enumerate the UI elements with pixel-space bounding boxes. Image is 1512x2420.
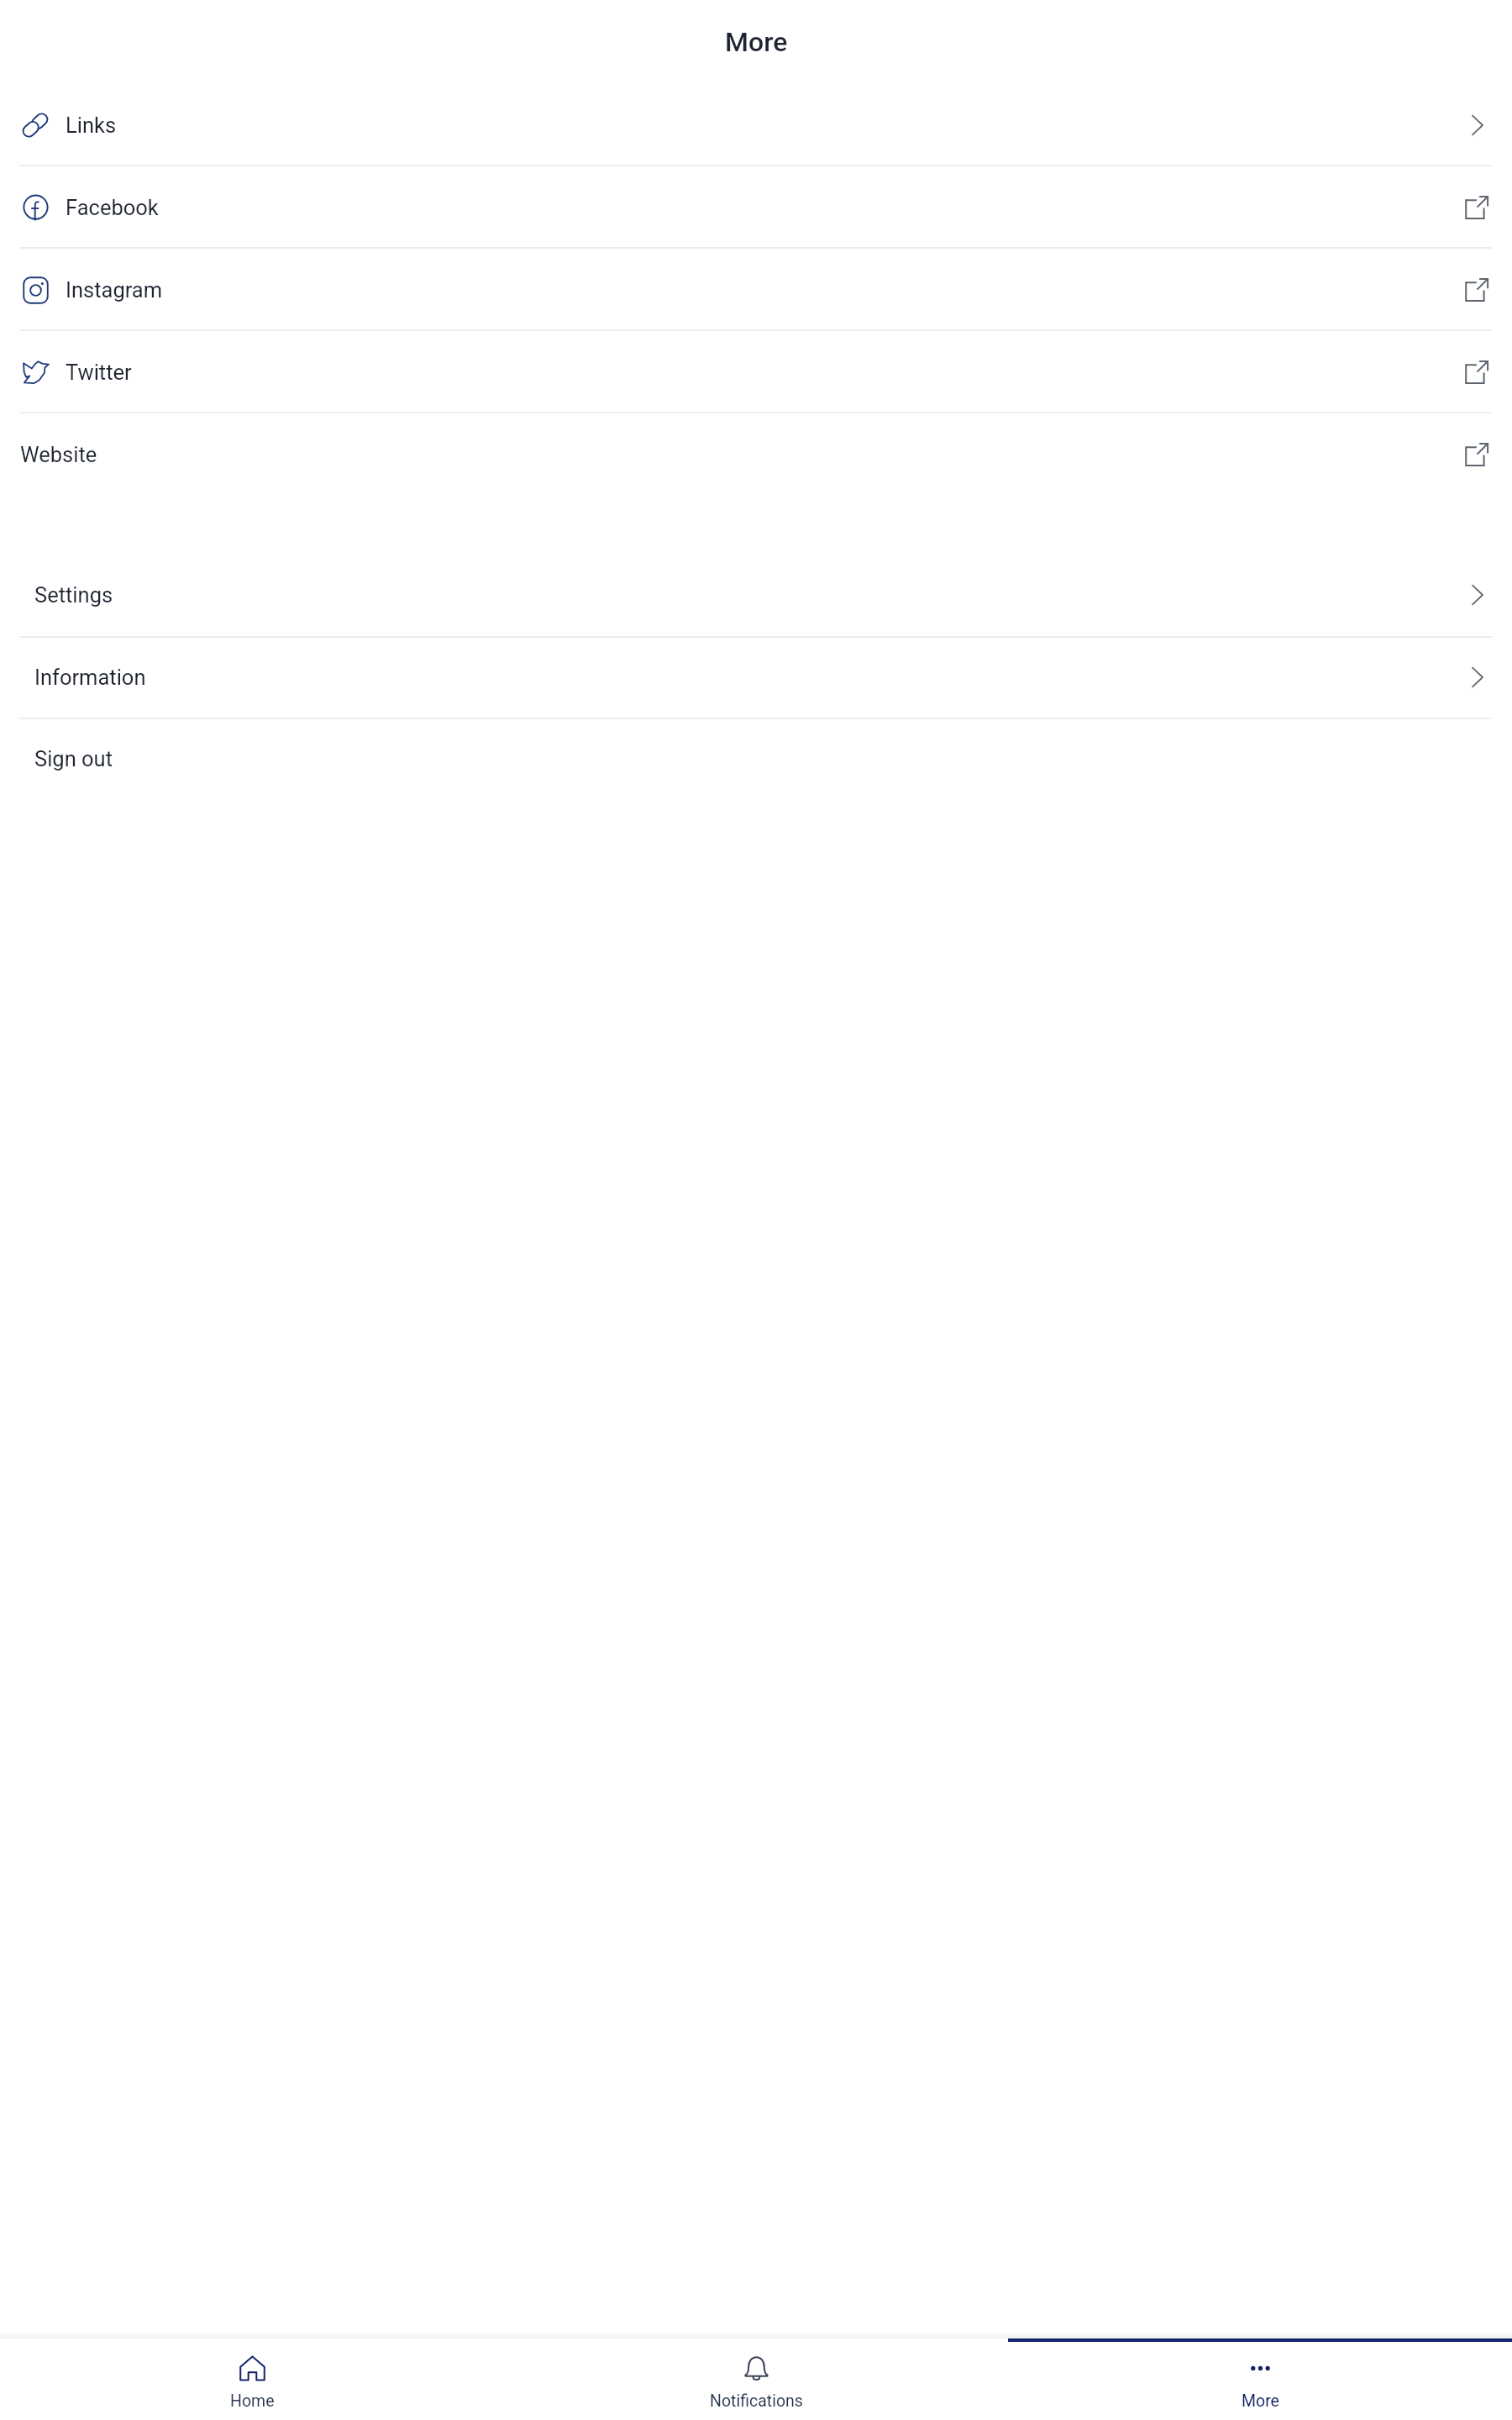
staticText: Twitter bbox=[66, 360, 132, 385]
staticText: Home bbox=[230, 2391, 275, 2411]
staticText: Notifications bbox=[710, 2391, 803, 2411]
button[interactable]: Links bbox=[0, 84, 1512, 166]
staticText: Website bbox=[20, 442, 97, 467]
staticText: Instagram bbox=[66, 277, 163, 302]
button[interactable]: Home bbox=[0, 2338, 504, 2420]
staticText: More bbox=[725, 26, 788, 58]
button[interactable]: Notifications bbox=[504, 2338, 1008, 2420]
staticText: Settings bbox=[34, 582, 113, 608]
staticText: Facebook bbox=[66, 195, 159, 220]
staticText: More bbox=[1242, 2391, 1279, 2411]
button[interactable]: Sign out bbox=[0, 719, 1512, 802]
staticText: Sign out bbox=[34, 746, 113, 771]
button[interactable]: Twitter bbox=[0, 331, 1512, 413]
button[interactable]: Information bbox=[0, 638, 1512, 719]
button[interactable]: More bbox=[1008, 2338, 1512, 2420]
button[interactable]: Instagram bbox=[0, 249, 1512, 331]
staticText: Information bbox=[34, 665, 146, 690]
staticText: Links bbox=[66, 113, 117, 138]
button[interactable]: Facebook bbox=[0, 166, 1512, 249]
button[interactable]: Settings bbox=[0, 555, 1512, 638]
button[interactable]: Website bbox=[0, 413, 1512, 496]
